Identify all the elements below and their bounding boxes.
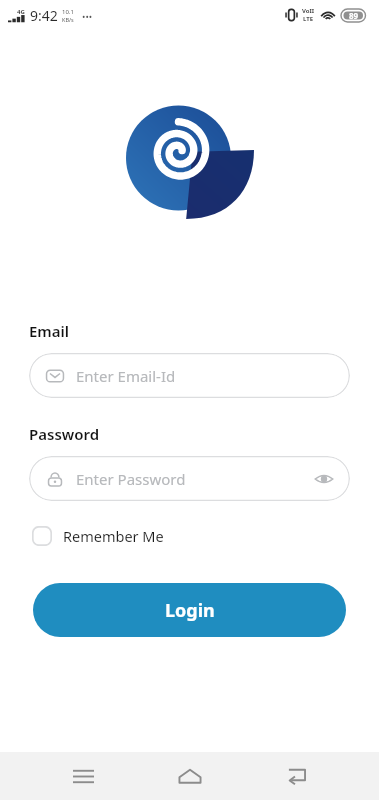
button[interactable]: Back [272, 752, 320, 800]
button[interactable]: Enter Password [29, 456, 350, 501]
staticText: 10.1 [62, 8, 74, 16]
button[interactable]: Login [33, 583, 346, 637]
staticText: Enter Email-Id [76, 366, 176, 386]
staticText: 4G [17, 8, 25, 16]
button[interactable]: Enter Email-Id [29, 353, 350, 398]
staticText: Email [29, 321, 70, 341]
staticText: 89 [349, 10, 359, 21]
button[interactable]: Recents [59, 752, 107, 800]
staticText: KB/s [62, 16, 74, 23]
button[interactable]: Show password [314, 469, 334, 489]
staticText: Enter Password [76, 469, 186, 489]
staticText: VoII [302, 7, 315, 15]
staticText: 9:42 [30, 6, 58, 25]
button[interactable]: Remember Me [30, 522, 166, 550]
button[interactable]: Home [166, 752, 214, 800]
staticText: Password [29, 424, 100, 444]
staticText: Remember Me [63, 526, 164, 546]
staticText: Login [165, 598, 215, 623]
staticText: ••• [82, 10, 93, 22]
staticText: LTE [303, 15, 314, 23]
